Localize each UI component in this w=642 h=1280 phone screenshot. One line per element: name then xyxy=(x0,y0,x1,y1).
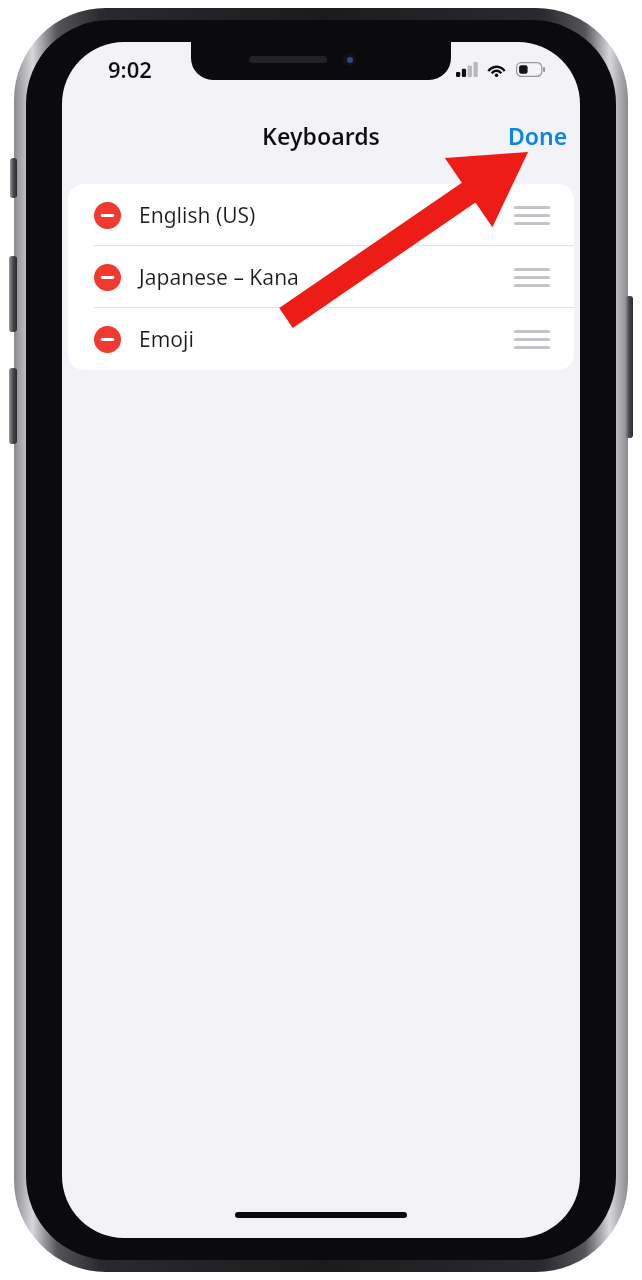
button[interactable]: Remove Emoji xyxy=(94,326,121,353)
button[interactable]: Reorder Japanese – Kana xyxy=(510,257,554,297)
button[interactable]: Remove Emoji xyxy=(68,308,574,370)
button[interactable]: Done xyxy=(496,114,580,157)
staticText: Japanese – Kana xyxy=(139,263,299,292)
button[interactable]: Remove English (US) xyxy=(68,184,574,246)
staticText: Emoji xyxy=(139,325,194,354)
staticText: English (US) xyxy=(139,201,256,230)
staticText: Keyboards xyxy=(262,120,380,151)
button[interactable]: Reorder English (US) xyxy=(510,195,554,235)
button[interactable]: Reorder Emoji xyxy=(510,319,554,359)
staticText: 9:02 xyxy=(108,54,152,84)
button[interactable]: Remove English (US) xyxy=(94,202,121,229)
button[interactable]: Remove Japanese – Kana xyxy=(94,264,121,291)
button[interactable]: Remove Japanese – Kana xyxy=(68,246,574,308)
staticText: Done xyxy=(508,120,568,151)
